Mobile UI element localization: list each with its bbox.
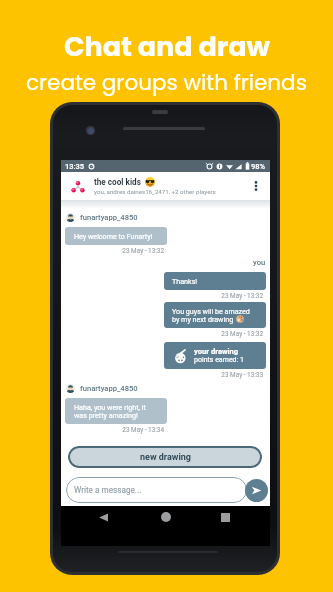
staticText: create groups with friends: [26, 67, 307, 97]
staticText: funartyapp_4850: [80, 213, 138, 222]
staticText: your drawing: [194, 347, 239, 356]
staticText: 23 May - 13:32: [164, 292, 263, 300]
button[interactable]: the cool kids: [61, 172, 270, 200]
staticText: 23 May - 13:32: [65, 247, 164, 255]
staticText: was pretty amazing!: [74, 411, 138, 419]
staticText: Write a message...: [74, 485, 142, 495]
staticText: Haha, you were right, it: [74, 403, 146, 411]
staticText: you, andres daines16_2471, +2 other play…: [94, 188, 216, 195]
staticText: points earned: 1: [194, 356, 244, 364]
button[interactable]: Recents: [214, 506, 236, 528]
staticText: Chat and draw: [64, 28, 270, 66]
staticText: You guys will be amazed: [172, 307, 250, 315]
button[interactable]: Back: [92, 506, 114, 528]
staticText: by my next drawing: [172, 315, 234, 323]
button[interactable]: Home: [155, 506, 177, 528]
button[interactable]: More options: [246, 176, 266, 196]
staticText: you: [253, 258, 266, 267]
button[interactable]: Write a message...: [66, 477, 247, 503]
staticText: funartyapp_4850: [80, 384, 138, 393]
staticText: 23 May - 13:34: [65, 426, 164, 434]
staticText: 23 May - 13:32: [164, 330, 263, 338]
staticText: 23 May - 13:33: [164, 371, 263, 379]
staticText: Thanks!: [172, 277, 198, 285]
staticText: Hey welcome to Funarty!: [74, 232, 153, 240]
staticText: the cool kids: [94, 177, 141, 187]
button[interactable]: your drawing: [164, 342, 266, 369]
staticText: 13:35: [65, 162, 85, 171]
button[interactable]: new drawing: [68, 446, 262, 468]
staticText: new drawing: [140, 452, 191, 463]
button[interactable]: Send: [245, 479, 268, 502]
staticText: 98%: [251, 162, 266, 171]
